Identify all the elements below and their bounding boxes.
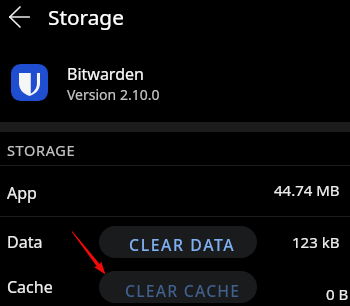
staticText: 123 kB — [292, 232, 340, 252]
staticText: Bitwarden — [67, 63, 144, 85]
button[interactable]: Bitwarden — [0, 56, 350, 108]
button[interactable]: Back — [7, 4, 33, 30]
staticText: CLEAR DATA — [129, 234, 236, 256]
button[interactable]: CLEAR DATA — [99, 226, 257, 258]
button[interactable]: App — [0, 166, 350, 216]
staticText: STORAGE — [7, 140, 76, 160]
staticText: Version 2.10.0 — [67, 85, 160, 104]
button[interactable]: CLEAR CACHE — [99, 271, 257, 303]
staticText: Storage — [48, 3, 124, 31]
staticText: App — [7, 182, 37, 204]
staticText: Data — [7, 231, 43, 253]
staticText: 44.74 MB — [274, 180, 340, 200]
staticText: CLEAR CACHE — [125, 280, 241, 302]
staticText: 0 B — [326, 284, 349, 304]
staticText: Cache — [7, 276, 53, 298]
